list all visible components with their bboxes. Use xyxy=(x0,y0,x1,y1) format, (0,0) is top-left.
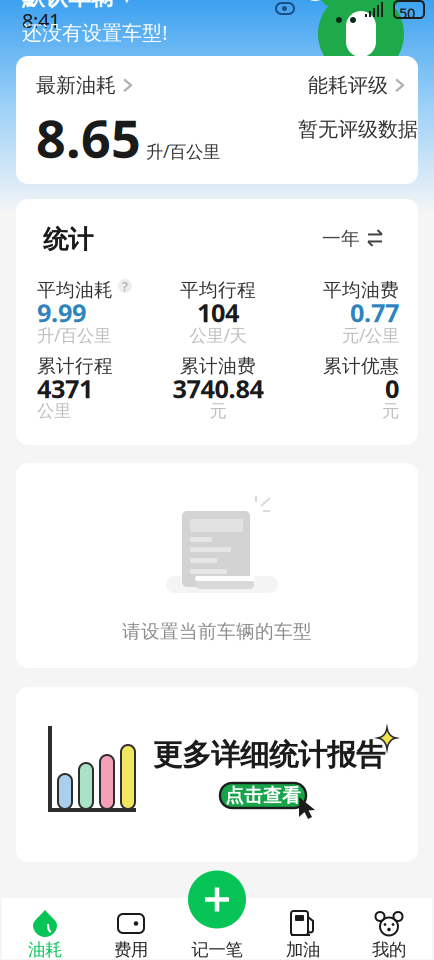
staticText: 元 xyxy=(209,400,226,422)
button[interactable]: 油耗 xyxy=(2,898,88,959)
staticText: 能耗评级 xyxy=(308,73,388,98)
staticText: 104 xyxy=(197,296,239,329)
staticText: 记一笔 xyxy=(191,939,242,960)
staticText: 8.65 xyxy=(36,103,141,172)
button[interactable]: 能耗评级 xyxy=(308,73,404,98)
button[interactable]: 更多详细统计报告 xyxy=(16,687,418,862)
staticText: 暂无评级数据 xyxy=(298,117,418,142)
staticText: 升/百公里 xyxy=(146,140,220,163)
staticText: 升/百公里 xyxy=(37,323,111,346)
staticText: 50 xyxy=(399,3,415,22)
staticText: ? xyxy=(122,277,128,295)
staticText: 油耗 xyxy=(28,939,62,960)
staticText: 更多详细统计报告 xyxy=(153,737,385,773)
staticText: 0.77 xyxy=(350,296,399,329)
button[interactable]: 最新油耗 xyxy=(36,73,132,98)
staticText: 平均油费 xyxy=(323,278,399,301)
staticText: 还没有设置车型! xyxy=(22,19,167,46)
staticText: 加油 xyxy=(286,939,320,960)
button[interactable]: 默认车辆 xyxy=(22,0,131,11)
staticText: 0 xyxy=(385,372,399,405)
staticText: 统计 xyxy=(43,224,93,255)
staticText: 平均行程 xyxy=(180,278,256,301)
staticText: 公里 xyxy=(37,400,71,422)
staticText: 默认车辆 xyxy=(22,0,114,11)
staticText: 最新油耗 xyxy=(36,73,116,98)
staticText: 3740.84 xyxy=(172,372,263,405)
staticText: Hi xyxy=(305,0,323,2)
staticText: 累计优惠 xyxy=(323,354,399,377)
staticText: 我的 xyxy=(372,939,406,960)
button[interactable]: 记一笔 xyxy=(188,870,246,928)
staticText: 元 xyxy=(382,400,399,422)
staticText: 8:41 xyxy=(22,7,60,34)
staticText: 元/公里 xyxy=(342,323,399,346)
staticText: 9.99 xyxy=(37,296,86,329)
staticText: 点击查看 xyxy=(225,784,301,807)
button[interactable]: 我的 xyxy=(346,898,432,959)
staticText: 平均油耗 xyxy=(37,278,113,301)
button[interactable]: 一年 xyxy=(322,227,383,250)
staticText: 一年 xyxy=(322,227,360,250)
staticText: 累计行程 xyxy=(37,354,113,377)
staticText: 4371 xyxy=(37,372,93,405)
button[interactable]: 费用 xyxy=(88,898,174,959)
staticText: 累计油费 xyxy=(180,354,256,377)
staticText: 公里/天 xyxy=(189,323,246,346)
staticText: 请设置当前车辆的车型 xyxy=(122,620,312,643)
button[interactable]: 记一笔 xyxy=(174,898,260,959)
button[interactable]: 加油 xyxy=(260,898,346,959)
staticText: ▾ xyxy=(122,0,131,8)
staticText: 费用 xyxy=(114,939,148,960)
